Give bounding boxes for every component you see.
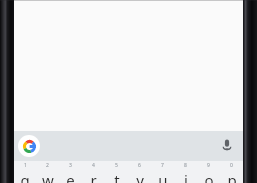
staticText: 8 <box>184 162 187 169</box>
staticText: r <box>90 170 97 183</box>
button[interactable]: 2 <box>36 161 59 183</box>
button[interactable]: 7 <box>151 161 174 183</box>
staticText: e <box>66 170 75 183</box>
button[interactable]: 0 <box>220 161 243 183</box>
staticText: p <box>227 170 237 183</box>
staticText: 1 <box>24 162 27 169</box>
button[interactable]: 5 <box>105 161 128 183</box>
button[interactable]: Voice input <box>216 135 238 157</box>
staticText: u <box>158 170 168 183</box>
staticText: o <box>204 170 214 183</box>
staticText: 9 <box>207 162 210 169</box>
button[interactable]: 1 <box>14 161 36 183</box>
staticText: 7 <box>161 162 164 169</box>
staticText: w <box>42 170 54 183</box>
staticText: 2 <box>46 162 49 169</box>
button[interactable]: 9 <box>197 161 220 183</box>
staticText: t <box>114 170 120 183</box>
staticText: y <box>136 170 144 183</box>
button[interactable]: 4 <box>82 161 105 183</box>
button[interactable]: 3 <box>59 161 82 183</box>
staticText: 0 <box>230 162 233 169</box>
staticText: 3 <box>69 162 72 169</box>
button[interactable]: 8 <box>174 161 197 183</box>
staticText: i <box>184 170 188 183</box>
button[interactable]: 6 <box>128 161 151 183</box>
button[interactable]: Google search <box>18 135 40 157</box>
staticText: q <box>20 170 30 183</box>
staticText: 4 <box>92 162 95 169</box>
staticText: 6 <box>138 162 141 169</box>
staticText: 5 <box>115 162 118 169</box>
